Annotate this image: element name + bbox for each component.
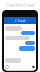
staticText: Cloud <box>15 18 25 23</box>
staticText: Chat With Cloud <box>6 2 34 8</box>
